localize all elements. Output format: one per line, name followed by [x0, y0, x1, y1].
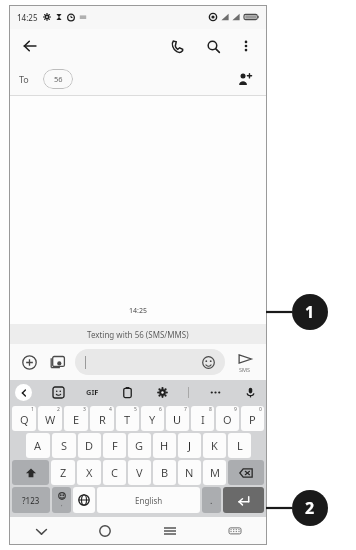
- staticText: 14:25: [17, 12, 38, 23]
- staticText: To: [19, 73, 29, 85]
- button[interactable]: R: [90, 406, 114, 431]
- staticText: 2: [57, 406, 60, 413]
- button[interactable]: U: [166, 406, 189, 431]
- staticText: N: [185, 465, 194, 480]
- button[interactable]: More: [206, 383, 224, 401]
- staticText: L: [237, 438, 243, 453]
- button[interactable]: B: [153, 460, 176, 485]
- button[interactable]: Y: [141, 406, 164, 431]
- staticText: 2: [305, 497, 315, 519]
- staticText: Texting with 56 (SMS/MMS): [87, 329, 189, 340]
- staticText: U: [173, 412, 182, 427]
- staticText: M: [210, 465, 220, 480]
- button[interactable]: Enter: [223, 487, 264, 513]
- button[interactable]: O: [216, 406, 239, 431]
- button[interactable]: Collapse toolbar: [15, 384, 32, 401]
- staticText: 14:25: [129, 306, 147, 316]
- button[interactable]: N: [178, 460, 201, 485]
- button[interactable]: W: [38, 406, 62, 431]
- button[interactable]: T: [116, 406, 139, 431]
- staticText: B: [161, 465, 169, 480]
- button[interactable]: Emoji: [52, 487, 71, 513]
- staticText: F: [112, 438, 118, 453]
- button[interactable]: English: [97, 487, 200, 513]
- staticText: A: [34, 438, 42, 453]
- staticText: 9: [234, 406, 237, 413]
- button[interactable]: Back: [19, 35, 41, 57]
- button[interactable]: G: [128, 433, 151, 458]
- button[interactable]: L: [228, 433, 251, 458]
- button[interactable]: .: [202, 487, 221, 513]
- button[interactable]: Stickers: [49, 383, 67, 401]
- button[interactable]: Recents: [137, 517, 202, 545]
- button[interactable]: F: [103, 433, 126, 458]
- staticText: ,: [61, 500, 63, 508]
- button[interactable]: ?123: [12, 487, 50, 513]
- button[interactable]: Gallery: [45, 350, 69, 374]
- button[interactable]: H: [153, 433, 176, 458]
- button[interactable]: Keyboard settings: [153, 383, 171, 401]
- button[interactable]: Call: [165, 34, 189, 58]
- staticText: ?123: [22, 495, 40, 506]
- button[interactable]: Attach: [17, 350, 41, 374]
- staticText: X: [86, 465, 93, 480]
- staticText: K: [211, 438, 218, 453]
- staticText: .: [210, 494, 213, 506]
- button[interactable]: Add recipient: [233, 67, 257, 91]
- staticText: 0: [259, 406, 262, 413]
- button[interactable]: Q: [12, 406, 36, 431]
- staticText: V: [136, 465, 143, 480]
- button[interactable]: V: [128, 460, 151, 485]
- staticText: 8: [209, 406, 212, 413]
- button[interactable]: Send SMS: [231, 352, 259, 373]
- staticText: G: [135, 438, 144, 453]
- button[interactable]: Z: [51, 460, 75, 485]
- staticText: E: [73, 412, 80, 427]
- button[interactable]: M: [203, 460, 226, 485]
- button[interactable]: E: [64, 406, 88, 431]
- staticText: 1: [305, 301, 315, 323]
- button[interactable]: Backspace: [228, 460, 264, 485]
- staticText: 7: [184, 406, 187, 413]
- staticText: J: [188, 438, 192, 453]
- staticText: S: [61, 438, 68, 453]
- staticText: 56: [54, 74, 63, 84]
- button[interactable]: Voice input: [241, 383, 259, 401]
- button[interactable]: I: [191, 406, 214, 431]
- button[interactable]: Switch keyboard: [202, 517, 267, 545]
- staticText: English: [135, 495, 163, 506]
- button[interactable]: Home: [73, 517, 137, 545]
- staticText: 3: [83, 406, 86, 413]
- staticText: Q: [20, 412, 29, 427]
- staticText: I: [201, 412, 205, 427]
- button[interactable]: X: [77, 460, 101, 485]
- button[interactable]: Search: [201, 34, 225, 58]
- staticText: T: [124, 412, 131, 427]
- staticText: Z: [60, 465, 67, 480]
- button[interactable]: K: [203, 433, 226, 458]
- staticText: Y: [149, 412, 156, 427]
- button[interactable]: C: [103, 460, 126, 485]
- button[interactable]: 56: [43, 69, 73, 89]
- staticText: O: [223, 412, 232, 427]
- button[interactable]: S: [52, 433, 76, 458]
- button[interactable]: P: [241, 406, 264, 431]
- staticText: C: [111, 465, 118, 480]
- staticText: 6: [159, 406, 162, 413]
- button[interactable]: Clipboard: [118, 383, 136, 401]
- staticText: SMS: [239, 366, 251, 373]
- staticText: W: [45, 412, 56, 427]
- staticText: D: [85, 438, 94, 453]
- button[interactable]: J: [178, 433, 201, 458]
- button[interactable]: A: [26, 433, 50, 458]
- button[interactable]: GIF: [84, 385, 101, 399]
- button[interactable]: Change language: [73, 487, 95, 513]
- button[interactable]: D: [78, 433, 101, 458]
- staticText: H: [160, 438, 169, 453]
- button[interactable]: More options: [235, 35, 257, 57]
- staticText: 4: [109, 406, 112, 413]
- button[interactable]: Shift: [12, 460, 49, 485]
- button[interactable]: Hide keyboard: [9, 517, 73, 545]
- button[interactable]: [75, 349, 225, 375]
- staticText: GIF: [86, 387, 99, 397]
